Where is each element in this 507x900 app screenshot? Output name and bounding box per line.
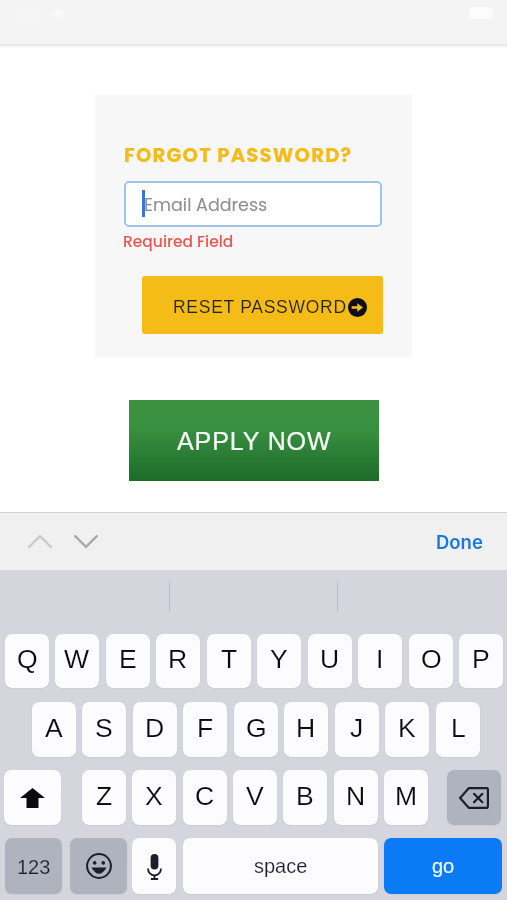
staticText: R <box>168 644 188 674</box>
button[interactable]: L <box>436 702 480 757</box>
staticText: C <box>195 781 215 811</box>
staticText: D <box>145 713 165 743</box>
staticText: S <box>95 713 113 743</box>
button[interactable]: T <box>207 634 251 688</box>
staticText: H <box>296 713 316 743</box>
staticText: A <box>45 713 63 743</box>
button[interactable]: S <box>82 702 126 757</box>
staticText: Y <box>270 644 288 674</box>
button[interactable]: R <box>156 634 200 688</box>
staticText: Done <box>436 531 483 553</box>
button[interactable]: D <box>133 702 177 757</box>
button[interactable]: M <box>384 770 428 825</box>
staticText: P <box>472 644 490 674</box>
button[interactable]: Email Address <box>124 181 382 227</box>
button[interactable]: Previous field <box>20 522 59 561</box>
button[interactable]: W <box>55 634 99 688</box>
button[interactable]: E <box>106 634 150 688</box>
staticText: E <box>119 644 137 674</box>
button[interactable]: N <box>334 770 378 825</box>
button[interactable]: Shift <box>4 770 61 825</box>
staticText: F <box>197 713 214 743</box>
staticText: N <box>346 781 366 811</box>
staticText: M <box>395 781 418 811</box>
button[interactable]: G <box>234 702 278 757</box>
staticText: I <box>376 644 384 674</box>
staticText: V <box>246 781 264 811</box>
button[interactable]: F <box>183 702 227 757</box>
button[interactable]: Y <box>257 634 301 688</box>
staticText: Q <box>17 644 38 674</box>
button[interactable]: go <box>384 838 502 894</box>
button[interactable]: B <box>283 770 327 825</box>
staticText: Z <box>96 781 113 811</box>
button[interactable]: K <box>385 702 429 757</box>
staticText: Email Address <box>144 193 268 218</box>
button[interactable]: O <box>409 634 453 688</box>
button[interactable]: A <box>32 702 76 757</box>
button[interactable]: RESET PASSWORD <box>142 276 383 334</box>
staticText: 123 <box>17 856 51 878</box>
staticText: K <box>398 713 416 743</box>
button[interactable]: V <box>233 770 277 825</box>
staticText: T <box>221 644 238 674</box>
button[interactable]: Z <box>82 770 126 825</box>
button[interactable]: U <box>308 634 352 688</box>
staticText: G <box>246 713 267 743</box>
button[interactable]: H <box>284 702 328 757</box>
staticText: J <box>350 713 364 743</box>
button[interactable]: C <box>183 770 227 825</box>
button[interactable]: space <box>183 838 378 894</box>
staticText: space <box>254 855 308 877</box>
staticText: L <box>451 713 466 743</box>
staticText: B <box>296 781 314 811</box>
staticText: U <box>320 644 340 674</box>
button[interactable]: Dictation <box>132 838 176 894</box>
staticText: Required Field <box>123 231 234 253</box>
staticText: W <box>64 644 90 674</box>
button[interactable]: Backspace <box>447 770 501 825</box>
staticText: RESET PASSWORD <box>173 297 347 317</box>
staticText: FORGOT PASSWORD? <box>124 142 353 169</box>
button[interactable]: Done <box>424 521 495 563</box>
staticText: O <box>421 644 442 674</box>
button[interactable]: Emoji <box>70 838 127 894</box>
button[interactable]: APPLY NOW <box>129 400 379 481</box>
button[interactable]: Q <box>5 634 49 688</box>
button[interactable]: X <box>132 770 176 825</box>
button[interactable]: J <box>335 702 379 757</box>
button[interactable]: I <box>358 634 402 688</box>
staticText: go <box>432 855 455 877</box>
staticText: X <box>145 781 163 811</box>
button[interactable]: P <box>459 634 503 688</box>
staticText: APPLY NOW <box>177 427 332 455</box>
button[interactable]: 123 <box>5 838 62 894</box>
button[interactable]: Next field <box>66 522 105 561</box>
